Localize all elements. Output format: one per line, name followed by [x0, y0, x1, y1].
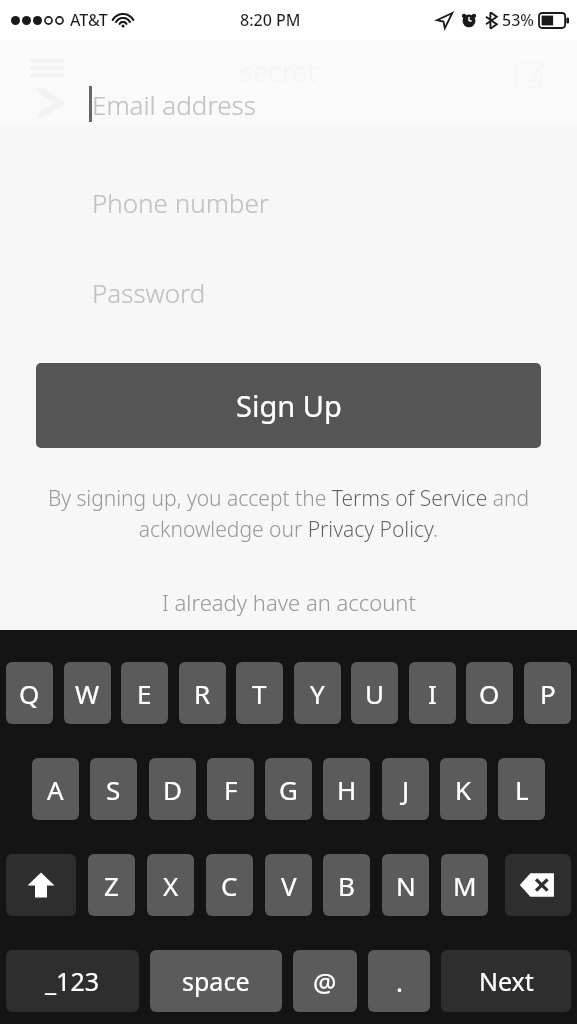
staticText: E — [137, 676, 152, 711]
button[interactable]: Email address — [0, 82, 577, 126]
button[interactable]: H — [323, 758, 370, 820]
staticText: F — [224, 772, 238, 807]
button[interactable]: S — [90, 758, 137, 820]
staticText: Password — [92, 275, 206, 310]
button[interactable]: @ — [293, 950, 357, 1012]
button[interactable]: D — [149, 758, 196, 820]
staticText: M — [453, 868, 477, 903]
button[interactable]: I — [409, 662, 456, 724]
button[interactable]: J — [382, 758, 429, 820]
staticText: J — [402, 772, 410, 807]
staticText: Email address — [92, 87, 256, 122]
staticText: V — [281, 868, 297, 903]
button[interactable]: C — [206, 854, 253, 916]
button[interactable]: P — [524, 662, 571, 724]
button[interactable]: Password — [0, 262, 577, 322]
staticText: W — [75, 676, 100, 711]
staticText: B — [338, 868, 355, 903]
staticText: K — [455, 772, 472, 807]
staticText: L — [515, 772, 529, 807]
staticText: Z — [104, 868, 119, 903]
staticText: _123 — [45, 964, 100, 998]
staticText: I — [428, 676, 437, 711]
button[interactable]: . — [368, 950, 430, 1012]
button[interactable]: _123 — [6, 950, 139, 1012]
staticText: Phone number — [92, 185, 270, 220]
staticText: Sign Up — [236, 386, 342, 425]
button[interactable]: Backspace — [505, 854, 571, 916]
staticText: N — [396, 868, 416, 903]
button[interactable]: Z — [88, 854, 135, 916]
button[interactable]: U — [351, 662, 398, 724]
button[interactable]: E — [121, 662, 168, 724]
staticText: C — [221, 868, 238, 903]
staticText: R — [194, 676, 211, 711]
staticText: X — [163, 868, 179, 903]
button[interactable]: X — [147, 854, 194, 916]
button[interactable]: A — [32, 758, 79, 820]
button[interactable]: F — [207, 758, 254, 820]
staticText: @ — [313, 964, 337, 999]
staticText: 53% — [502, 9, 534, 31]
button[interactable]: Next — [441, 950, 571, 1012]
button[interactable]: Y — [294, 662, 341, 724]
button[interactable]: Sign Up — [36, 363, 541, 448]
button[interactable]: K — [440, 758, 487, 820]
staticText: . — [396, 964, 403, 999]
staticText: H — [337, 772, 357, 807]
button[interactable]: Shift — [6, 854, 76, 916]
button[interactable]: space — [150, 950, 282, 1012]
staticText: O — [479, 676, 500, 711]
button[interactable]: R — [179, 662, 226, 724]
staticText: P — [540, 676, 556, 711]
button[interactable]: By signing up, you accept the Terms of S… — [28, 484, 549, 543]
staticText: G — [279, 772, 298, 807]
button[interactable]: B — [323, 854, 370, 916]
staticText: S — [106, 772, 121, 807]
button[interactable]: T — [236, 662, 283, 724]
button[interactable]: V — [265, 854, 312, 916]
button[interactable]: L — [498, 758, 545, 820]
button[interactable]: W — [64, 662, 111, 724]
staticText: A — [47, 772, 64, 807]
button[interactable]: G — [265, 758, 312, 820]
staticText: T — [252, 676, 267, 711]
button[interactable]: Q — [6, 662, 53, 724]
staticText: By signing up, you accept the Terms of S… — [28, 484, 549, 543]
staticText: space — [182, 964, 250, 998]
button[interactable]: N — [382, 854, 429, 916]
button[interactable]: M — [441, 854, 488, 916]
staticText: Y — [310, 676, 325, 711]
staticText: I already have an account — [162, 587, 416, 617]
staticText: U — [365, 676, 385, 711]
button[interactable]: O — [466, 662, 513, 724]
staticText: Next — [479, 964, 534, 998]
button[interactable]: Phone number — [0, 172, 577, 232]
button[interactable]: I already have an account — [0, 580, 577, 624]
staticText: Q — [19, 676, 40, 711]
staticText: D — [163, 772, 182, 807]
staticText: AT&T — [70, 9, 108, 31]
staticText: 8:20 PM — [240, 9, 301, 31]
